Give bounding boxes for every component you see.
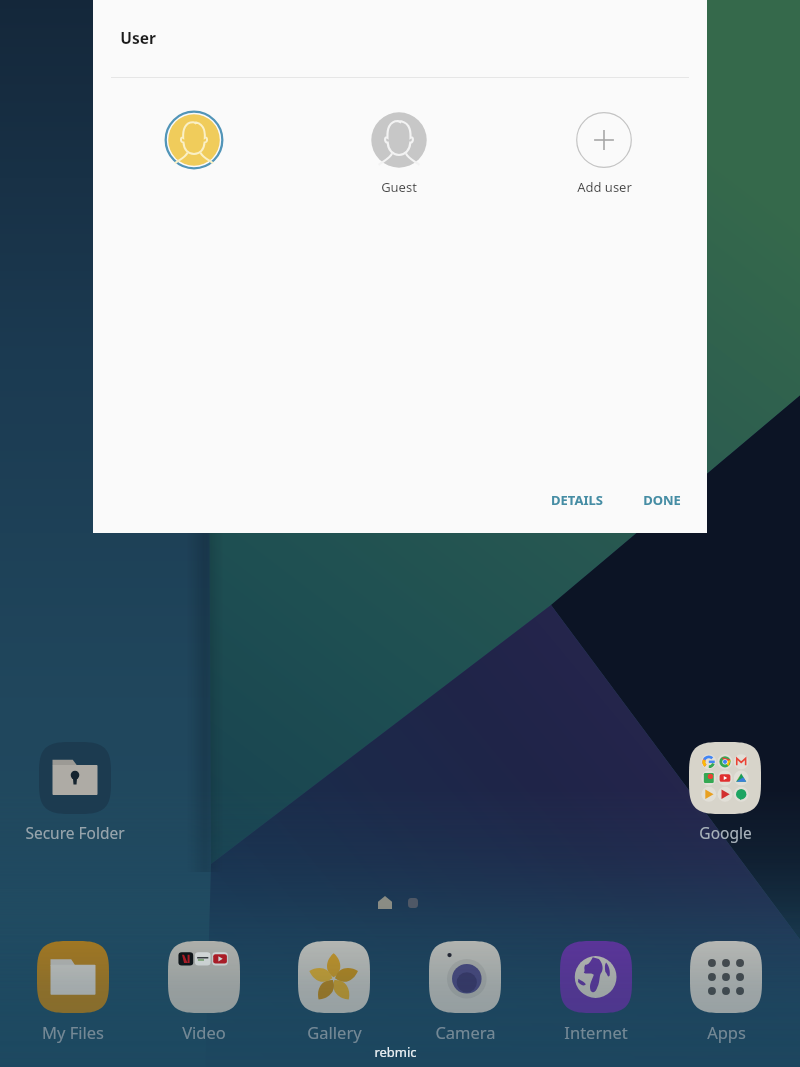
button[interactable]: Apps bbox=[671, 941, 781, 1043]
staticText: Google bbox=[699, 822, 752, 843]
button[interactable] bbox=[144, 110, 244, 170]
button[interactable]: Gallery bbox=[279, 941, 389, 1043]
staticText: User bbox=[120, 27, 156, 48]
staticText: Apps bbox=[707, 1021, 746, 1043]
button[interactable]: Video bbox=[149, 941, 259, 1043]
button[interactable]: Internet bbox=[541, 941, 651, 1043]
button[interactable]: DONE bbox=[626, 482, 698, 518]
staticText: Guest bbox=[381, 178, 417, 196]
button[interactable]: Google bbox=[675, 742, 775, 843]
staticText: DONE bbox=[643, 491, 681, 509]
staticText: Camera bbox=[435, 1021, 496, 1043]
staticText: Internet bbox=[564, 1021, 628, 1043]
button[interactable]: DETAILS bbox=[534, 482, 620, 518]
button: User bbox=[93, 0, 707, 533]
staticText: Video bbox=[182, 1021, 226, 1043]
staticText: Gallery bbox=[307, 1021, 362, 1043]
button[interactable]: Camera bbox=[410, 941, 520, 1043]
staticText: rebmic bbox=[374, 1043, 417, 1061]
staticText: Secure Folder bbox=[25, 822, 125, 843]
button[interactable]: Guest bbox=[349, 110, 449, 196]
button[interactable]: Add user bbox=[554, 110, 654, 196]
staticText: DETAILS bbox=[551, 491, 603, 509]
staticText: Add user bbox=[577, 178, 632, 196]
staticText: My Files bbox=[42, 1021, 104, 1043]
button[interactable]: Secure Folder bbox=[25, 742, 125, 843]
button[interactable]: My Files bbox=[18, 941, 128, 1043]
